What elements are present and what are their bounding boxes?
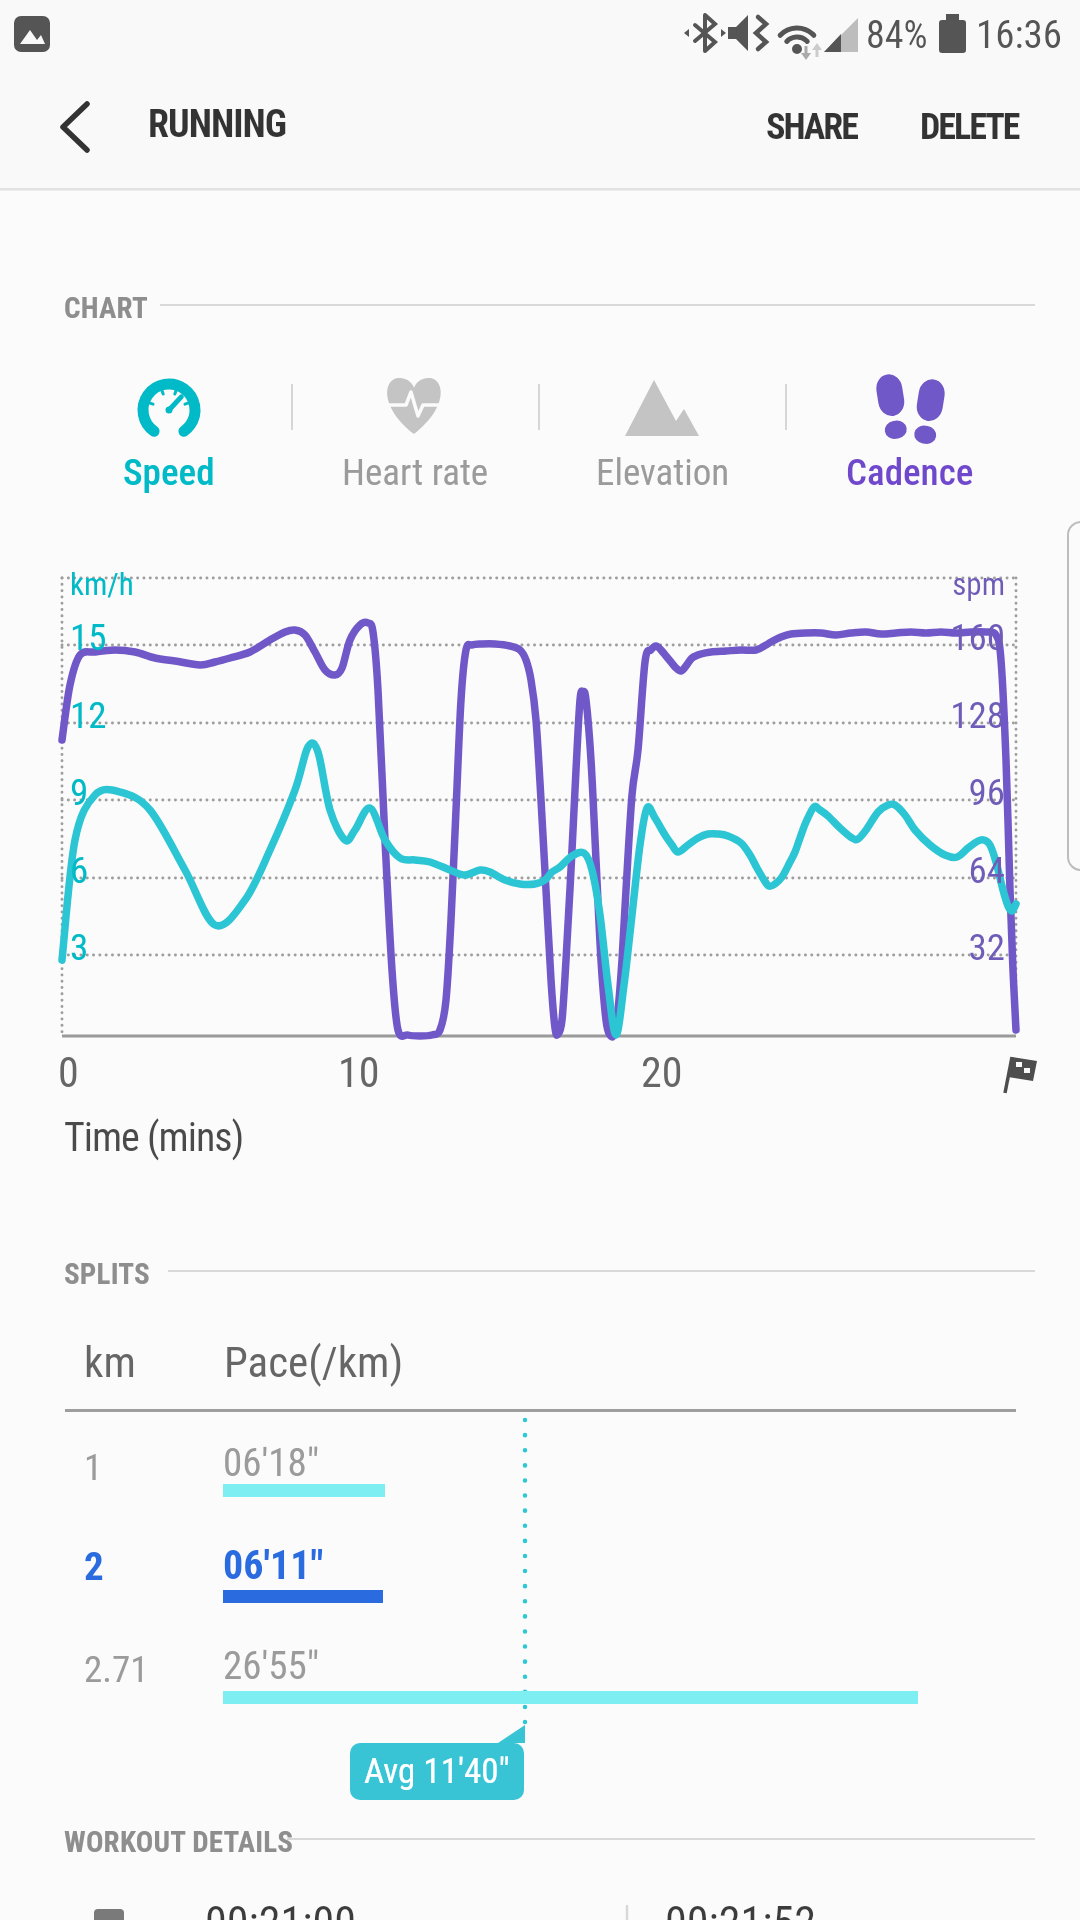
button[interactable] — [40, 90, 110, 164]
staticText: 6 — [70, 849, 89, 892]
staticText: 06'11" — [223, 1542, 324, 1589]
staticText: SHARE — [766, 106, 857, 148]
staticText: WORKOUT DETAILS — [64, 1825, 294, 1859]
staticText: 1 — [84, 1446, 103, 1489]
button[interactable]: SHARE — [744, 94, 879, 160]
button[interactable]: DELETE — [898, 94, 1041, 160]
staticText: 00:21:00 — [205, 1897, 356, 1920]
staticText: 128 — [805, 694, 1005, 737]
staticText: 0 — [58, 1048, 79, 1097]
staticText: CHART — [64, 291, 149, 325]
staticText: Elevation — [596, 451, 730, 494]
staticText: km/h — [70, 566, 134, 602]
button[interactable]: Speed — [45, 368, 292, 494]
staticText: RUNNING — [148, 102, 287, 147]
staticText: 06'18" — [223, 1440, 320, 1486]
staticText: 160 — [805, 616, 1005, 659]
staticText: Speed — [123, 451, 215, 494]
staticText: 32 — [805, 926, 1005, 969]
staticText: Avg 11'40" — [364, 1751, 510, 1792]
staticText: 26'55" — [223, 1643, 320, 1689]
staticText: 64 — [805, 849, 1005, 892]
staticText: 84% — [866, 13, 928, 58]
staticText: 15 — [70, 616, 107, 659]
staticText: 96 — [805, 771, 1005, 814]
staticText: 16:36 — [976, 12, 1063, 58]
staticText: DELETE — [920, 106, 1019, 148]
staticText: 12 — [70, 694, 107, 737]
staticText: 00:21:52 — [665, 1897, 816, 1920]
staticText: Heart rate — [342, 451, 489, 494]
staticText: km — [84, 1337, 136, 1387]
staticText: 2 — [84, 1544, 104, 1590]
staticText: Time (mins) — [64, 1114, 244, 1161]
button[interactable]: Heart rate — [292, 368, 539, 494]
staticText: Cadence — [846, 451, 974, 494]
staticText: 3 — [70, 926, 89, 969]
button[interactable]: Elevation — [539, 368, 786, 494]
staticText: 10 — [338, 1048, 380, 1097]
staticText: Pace(/km) — [224, 1337, 404, 1387]
staticText: 9 — [70, 771, 89, 814]
staticText: SPLITS — [64, 1257, 150, 1291]
button[interactable]: Cadence — [786, 368, 1033, 494]
staticText: 20 — [641, 1048, 683, 1097]
staticText: spm — [805, 566, 1005, 602]
staticText: 2.71 — [84, 1648, 149, 1691]
